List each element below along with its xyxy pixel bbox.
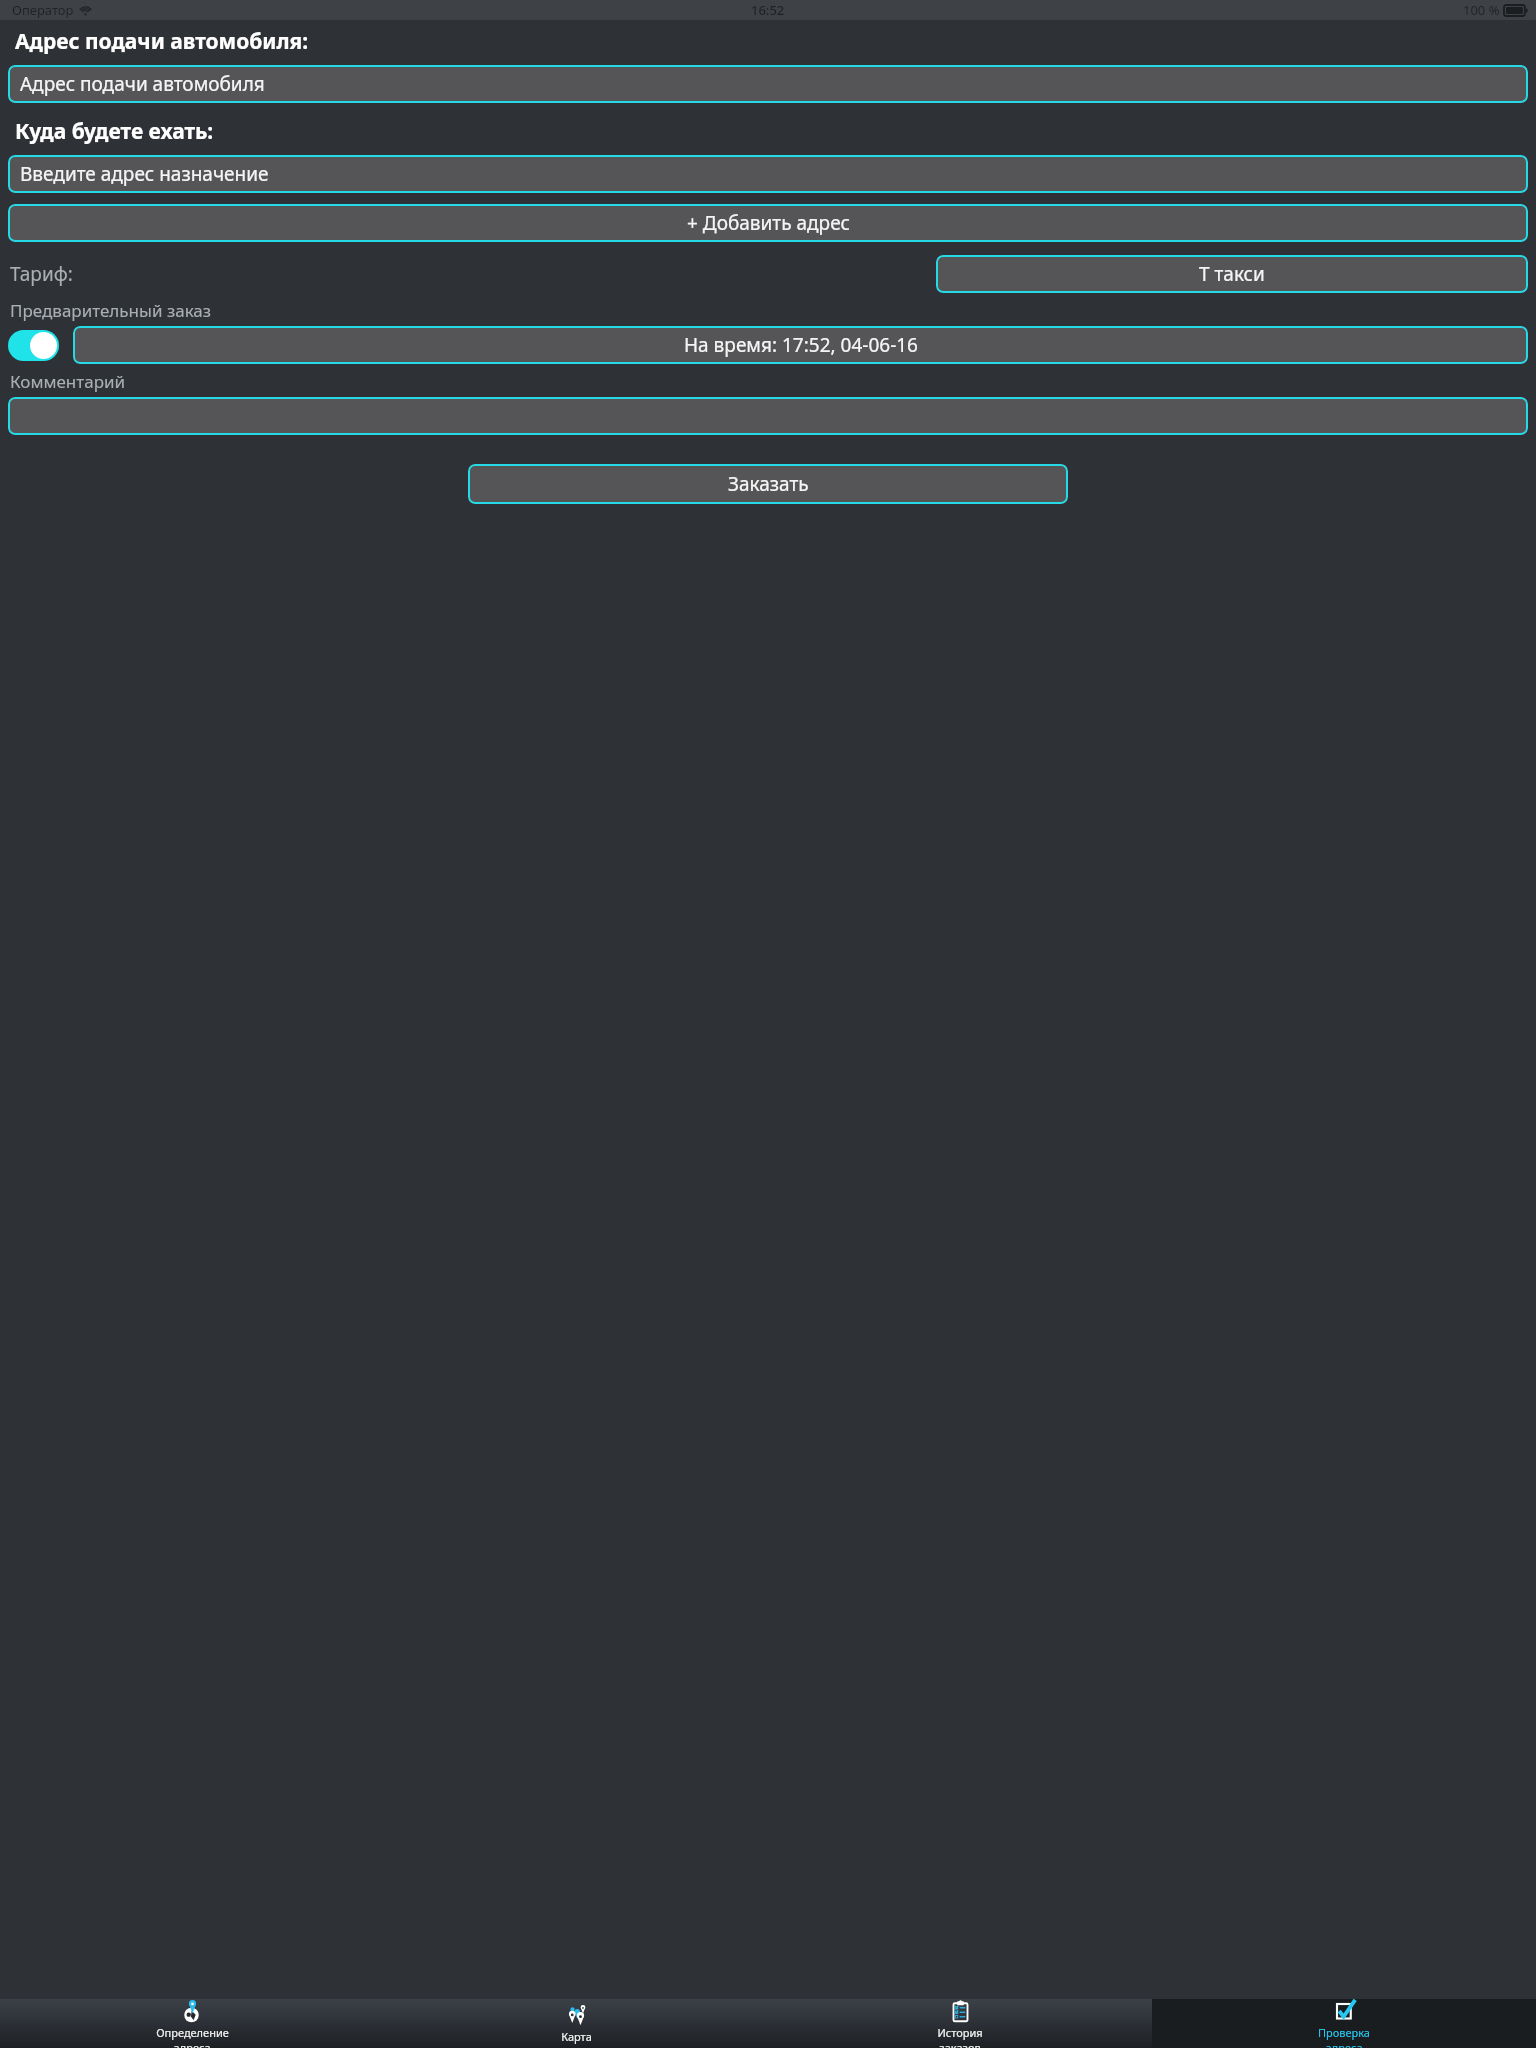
- staticText: Комментарий: [10, 370, 126, 393]
- staticText: Оператор: [12, 1, 74, 19]
- staticText: Заказать: [728, 471, 809, 497]
- button[interactable]: Введите адрес назначение: [8, 155, 1528, 193]
- button[interactable]: Т такси: [936, 255, 1528, 293]
- staticText: Куда будете ехать:: [15, 117, 214, 146]
- staticText: Адрес подачи автомобиля: [20, 71, 265, 97]
- staticText: Т такси: [1199, 261, 1265, 287]
- button[interactable]: Проверка: [1152, 1999, 1536, 2048]
- button[interactable]: На время: 17:52, 04-06-16: [73, 326, 1528, 364]
- staticText: Тариф:: [10, 261, 73, 287]
- staticText: Проверка: [1318, 2025, 1370, 2040]
- staticText: 100 %: [1463, 1, 1500, 19]
- staticText: На время: 17:52, 04-06-16: [684, 332, 918, 358]
- staticText: История: [937, 2025, 983, 2040]
- staticText: заказов: [939, 2040, 981, 2048]
- button[interactable]: Адрес подачи автомобиля: [8, 65, 1528, 103]
- button[interactable]: Заказать: [468, 464, 1068, 504]
- staticText: Введите адрес назначение: [20, 161, 269, 187]
- staticText: адреса: [1325, 2040, 1363, 2048]
- staticText: Предварительный заказ: [10, 299, 212, 322]
- staticText: Карта: [561, 2029, 592, 2044]
- button[interactable]: История: [768, 1999, 1152, 2048]
- staticText: 16:52: [751, 1, 785, 19]
- button[interactable]: + Добавить адрес: [8, 204, 1528, 242]
- staticText: + Добавить адрес: [687, 210, 850, 236]
- staticText: Адрес подачи автомобиля:: [15, 27, 309, 56]
- button[interactable]: Предварительный заказ: [8, 330, 59, 361]
- button[interactable]: Определение: [0, 1999, 384, 2048]
- staticText: Определение: [156, 2025, 229, 2040]
- staticText: адреса: [173, 2040, 211, 2048]
- button[interactable]: Карта: [384, 1999, 768, 2048]
- button[interactable]: [8, 397, 1528, 435]
